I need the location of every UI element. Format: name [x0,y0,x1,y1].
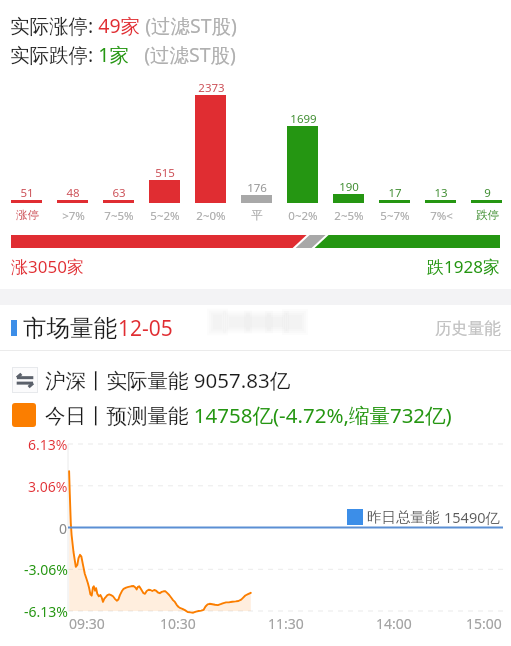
staticText: 13 [434,185,448,201]
staticText: 5~7% [380,208,410,224]
staticText: 10:30 [160,614,196,633]
staticText: 3.06% [28,477,68,496]
staticText: 7%< [430,208,453,224]
staticText: 2~0% [196,208,226,224]
button[interactable]: 历史量能 [435,318,501,339]
staticText: 0~2% [288,208,318,224]
staticText: 实际跌停: 1家 (过滤ST股) [10,41,236,68]
staticText: 63 [112,185,126,201]
staticText: 2373 [198,80,225,96]
staticText: 市场量能 [23,313,117,343]
staticText: 48 [66,185,80,201]
staticText: 平 [251,208,263,222]
staticText: 跌1928家 [427,255,500,278]
staticText: 跌停 [476,208,499,222]
staticText: 15:00 [466,614,502,633]
staticText: 15490亿 [444,507,500,527]
staticText: 09:30 [69,614,105,633]
staticText: 7~5% [104,208,134,224]
button[interactable]: Switch market [12,367,38,393]
staticText: 0 [59,519,68,538]
staticText: 176 [247,180,267,196]
staticText: 涨停 [16,208,39,222]
staticText: 14:00 [376,614,412,633]
staticText: 2~5% [334,208,364,224]
staticText: 1699 [290,111,317,127]
staticText: -6.13% [24,602,68,621]
staticText: 190 [339,179,359,195]
staticText: 6.13% [28,435,68,454]
staticText: 515 [155,165,175,181]
staticText: 11:30 [268,614,304,633]
staticText: 实际涨停: 49家 (过滤ST股) [10,12,237,39]
staticText: 涨3050家 [11,255,84,278]
staticText: >7% [62,208,85,224]
staticText: 沪深丨实际量能 9057.83亿 [45,366,291,394]
staticText: 12-05 [118,314,173,343]
staticText: 17 [388,185,402,201]
staticText: 51 [20,185,34,201]
staticText: 9 [484,185,491,201]
staticText: 5~2% [150,208,180,224]
staticText: 今日丨预测量能 14758亿(-4.72%,缩量732亿) [45,401,452,429]
staticText: 昨日总量能 [367,508,440,526]
staticText: -3.06% [24,560,68,579]
